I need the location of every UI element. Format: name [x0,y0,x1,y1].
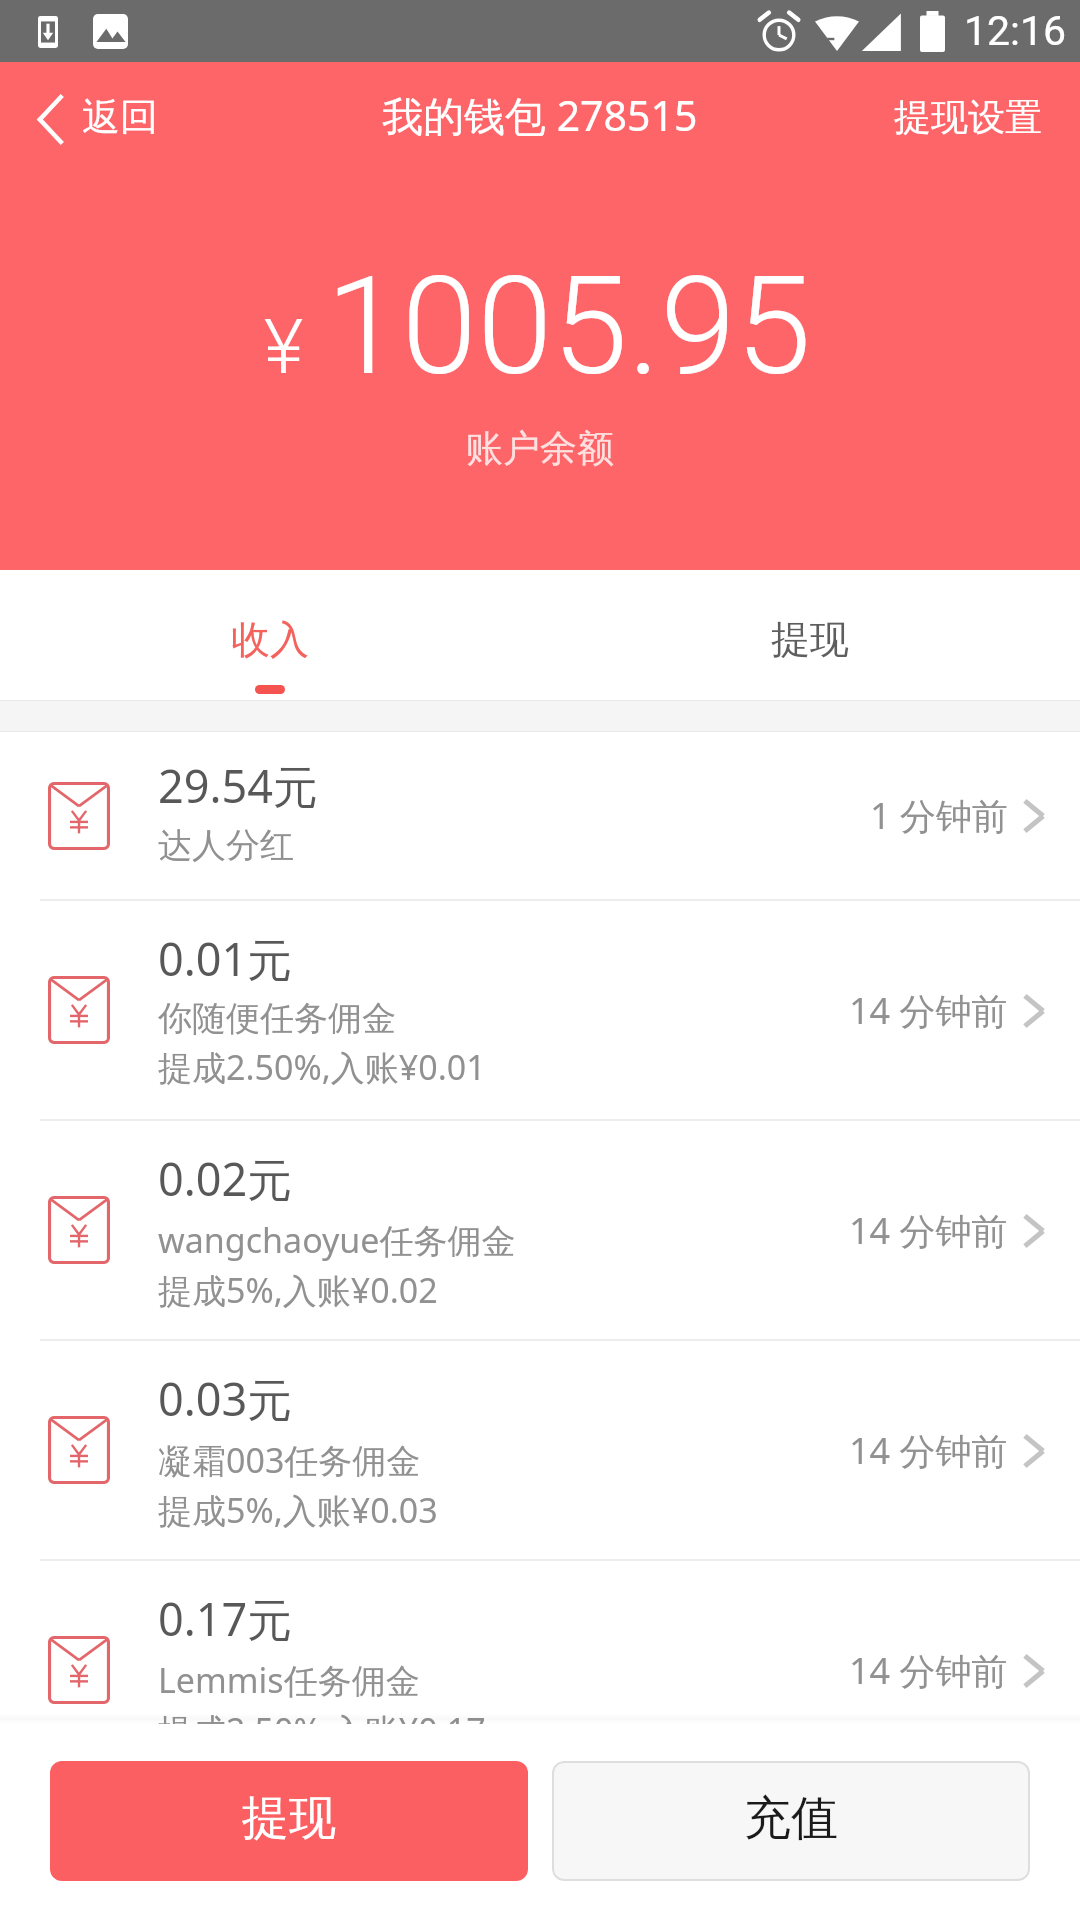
staticText: 达人分红 [158,824,294,867]
staticText: 提成5%,入账¥0.02 [158,1267,438,1313]
staticText: 提成2.50%,入账¥0.17 [158,1707,486,1753]
other: Income envelope [48,1636,110,1704]
button[interactable]: Income envelope [0,1341,1080,1559]
staticText: 返回 [82,93,158,141]
staticText: 29.54元 [158,755,319,816]
staticText: 凝霜003任务佣金 [158,1437,421,1483]
staticText: 14 分钟前 [849,1426,1008,1475]
staticText: 1005.95 [326,247,812,406]
staticText: 提现 [771,615,849,664]
staticText: 收入 [231,615,309,664]
staticText: 12:16 [964,7,1067,55]
staticText: wangchaoyue任务佣金 [158,1217,516,1263]
button[interactable]: 提现 [540,570,1080,700]
button[interactable]: 提现设置 [870,80,1080,155]
staticText: 提现 [242,1789,336,1848]
staticText: 0.01元 [158,928,293,989]
staticText: 14 分钟前 [849,1646,1008,1695]
button[interactable]: Income envelope [0,1121,1080,1339]
staticText: 账户余额 [466,425,614,472]
staticText: 0.17元 [158,1588,293,1649]
other: Income envelope [48,782,110,850]
staticText: 0.02元 [158,1148,293,1209]
button[interactable]: Income envelope [0,901,1080,1119]
staticText: 0.03元 [158,1368,293,1429]
button[interactable]: Income envelope [0,732,1080,899]
staticText: Lemmis任务佣金 [158,1657,420,1703]
staticText: 1 分钟前 [870,791,1008,840]
staticText: 我的钱包 278515 [382,87,698,143]
staticText: 提成2.50%,入账¥0.01 [158,1044,486,1090]
staticText: 充值 [744,1789,838,1848]
staticText: 你随便任务佣金 [158,997,396,1040]
staticText: 14 分钟前 [849,1206,1008,1255]
staticText: ¥ [264,302,304,391]
button[interactable]: 收入 [0,570,540,700]
button[interactable]: 充值 [552,1761,1030,1881]
button[interactable]: 提现 [50,1761,528,1881]
staticText: 提成5%,入账¥0.03 [158,1487,438,1533]
other: Income envelope [48,976,110,1044]
button[interactable]: 返回 [0,78,182,156]
other: Income envelope [48,1196,110,1264]
staticText: 提现设置 [894,94,1042,141]
other: Income envelope [48,1416,110,1484]
staticText: 14 分钟前 [849,986,1008,1035]
button[interactable]: Income envelope [0,1561,1080,1779]
